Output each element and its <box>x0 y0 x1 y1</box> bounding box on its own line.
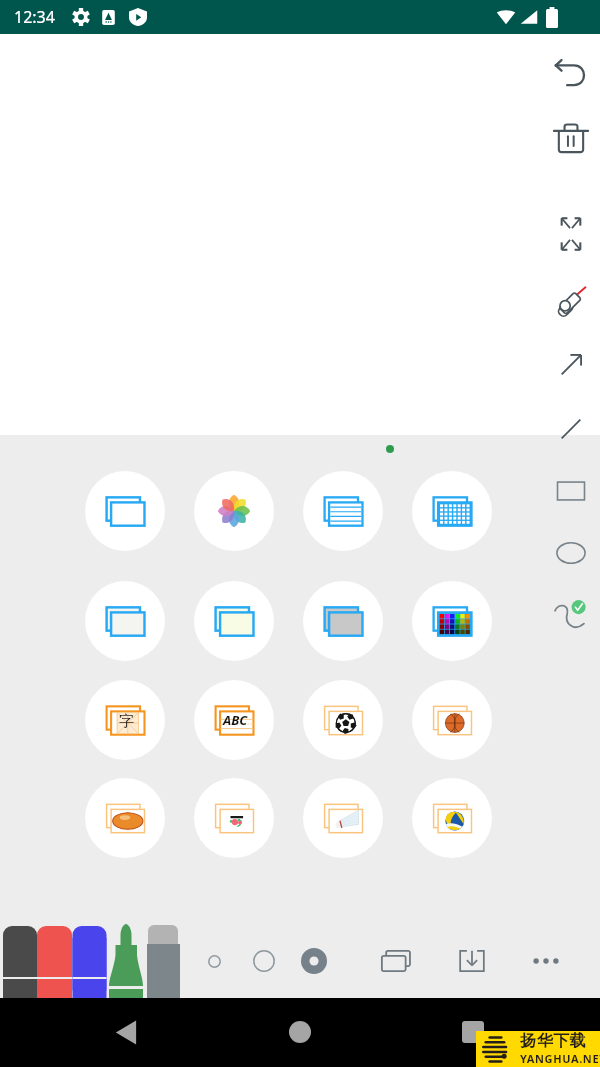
button[interactable]: Template 14 <box>194 778 274 858</box>
button[interactable]: Delete <box>542 111 600 169</box>
button[interactable]: Template 8 <box>412 581 492 661</box>
button[interactable]: Template 2 <box>194 471 274 551</box>
button[interactable]: Template 15 <box>303 778 383 858</box>
button[interactable]: Pages <box>374 938 420 984</box>
button[interactable]: Template 9 <box>85 680 165 760</box>
button[interactable]: Recent apps <box>445 1004 501 1060</box>
staticText: 字 <box>119 712 134 731</box>
button[interactable]: Template 6 <box>194 581 274 661</box>
button[interactable]: Template 11 <box>303 680 383 760</box>
button[interactable]: Ellipse <box>542 524 600 582</box>
button[interactable]: Thin stroke <box>195 942 233 980</box>
button[interactable]: Back <box>98 1004 154 1060</box>
button[interactable]: Template 13 <box>85 778 165 858</box>
staticText: ABC <box>223 711 248 729</box>
button[interactable]: Line <box>542 400 600 458</box>
button[interactable]: Freehand <box>542 584 600 642</box>
staticText: 扬华下载 <box>520 1031 586 1051</box>
button[interactable]: Template 12 <box>412 680 492 760</box>
button[interactable]: Home <box>272 1004 328 1060</box>
button[interactable]: Template 5 <box>85 581 165 661</box>
button[interactable]: Template 3 <box>303 471 383 551</box>
staticText: YANGHUA.NET <box>520 1051 600 1066</box>
button[interactable]: Undo <box>542 44 600 102</box>
button[interactable]: Template 7 <box>303 581 383 661</box>
staticText: 12:34 <box>14 6 55 28</box>
button[interactable]: Rectangle <box>542 462 600 520</box>
button[interactable]: Fullscreen <box>542 205 600 263</box>
button[interactable]: Arrow <box>542 336 600 394</box>
button[interactable]: Save <box>449 938 495 984</box>
button[interactable]: Pen colors <box>0 918 182 998</box>
button[interactable]: Template 10 <box>194 680 274 760</box>
button[interactable]: Thick stroke <box>295 942 333 980</box>
button[interactable]: Template 16 <box>412 778 492 858</box>
button[interactable]: Medium stroke <box>245 942 283 980</box>
button[interactable]: Template 4 <box>412 471 492 551</box>
button[interactable]: Highlighter <box>542 272 600 330</box>
button[interactable]: Template 1 <box>85 471 165 551</box>
button[interactable]: More options <box>523 938 569 984</box>
